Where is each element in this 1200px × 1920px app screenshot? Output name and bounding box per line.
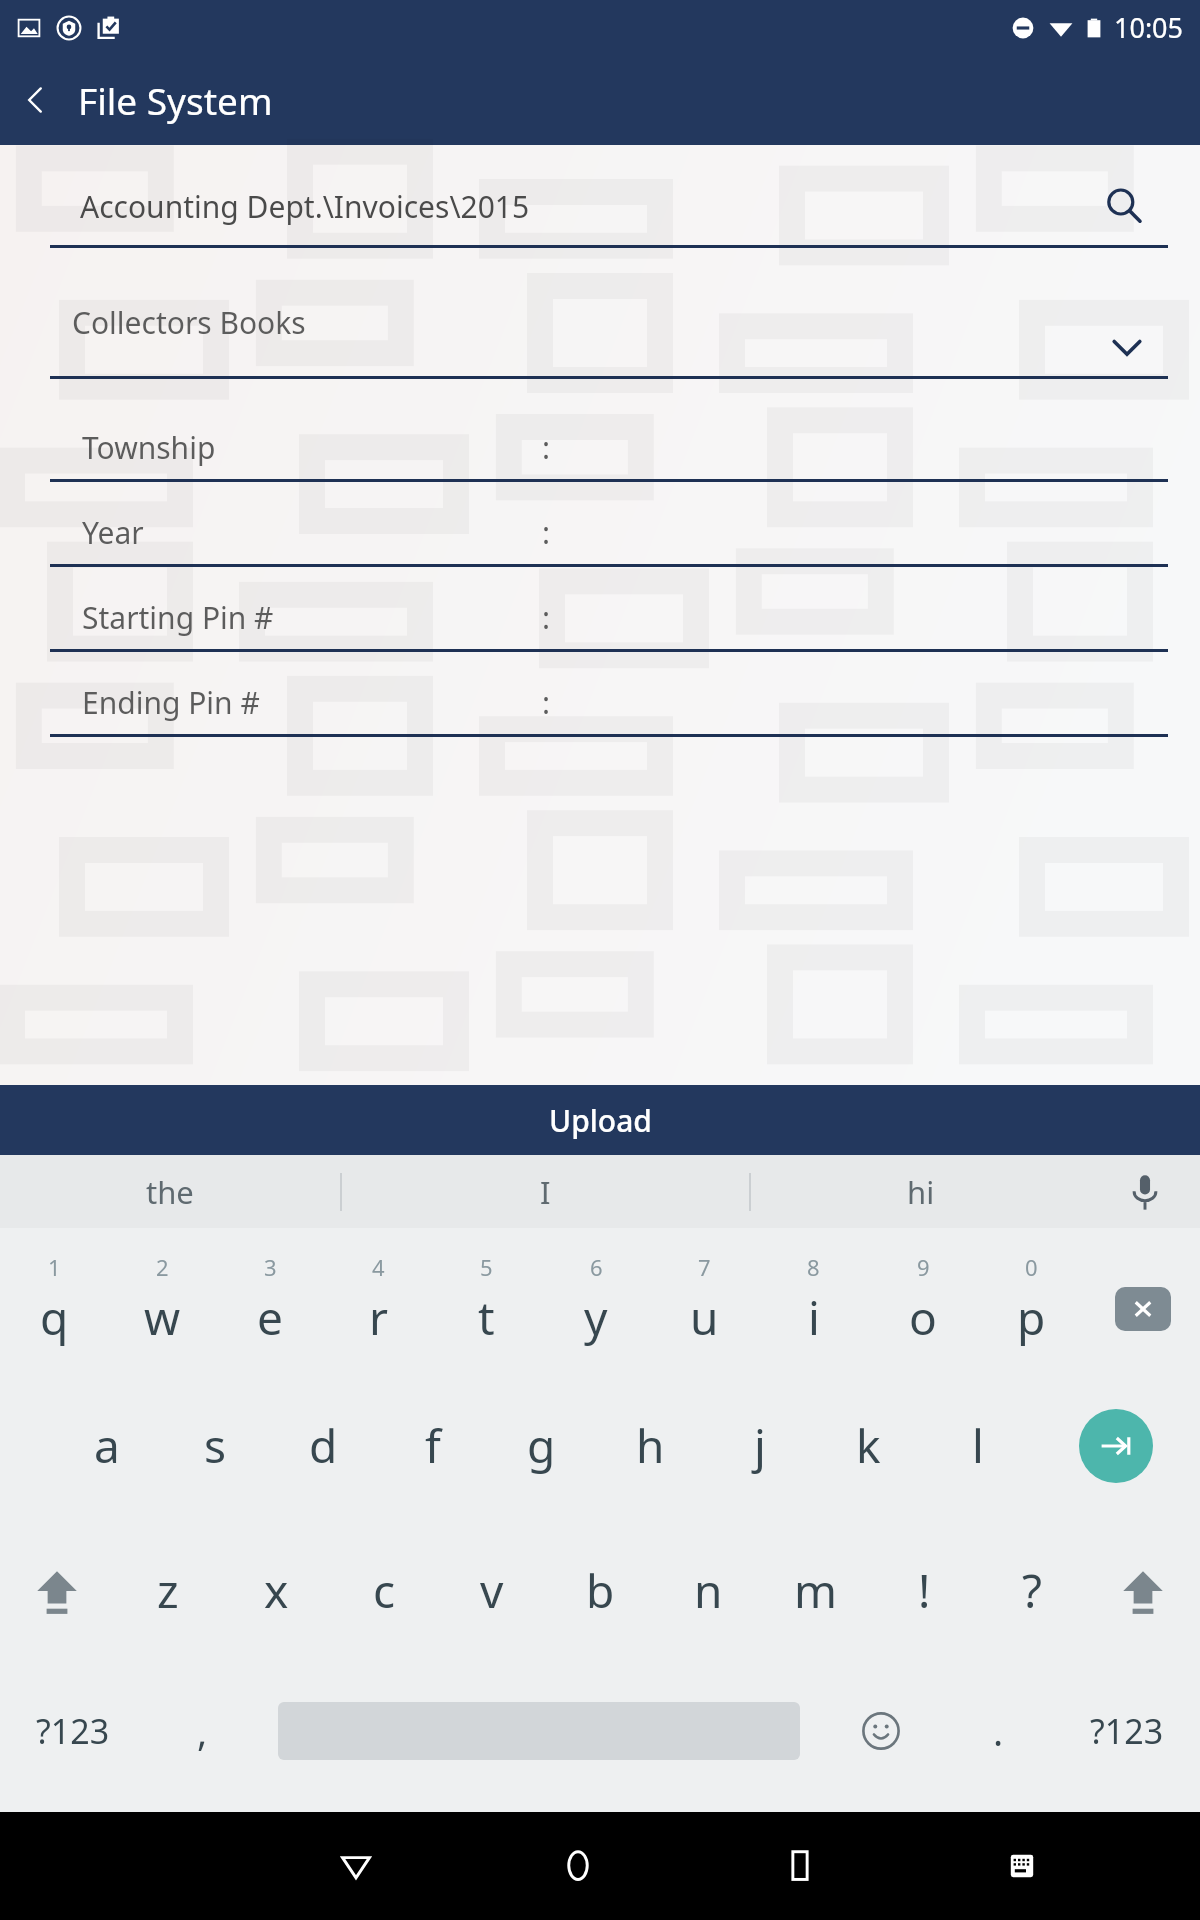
staticText: 0 [1025, 1252, 1038, 1282]
staticText: s [204, 1414, 227, 1477]
button[interactable]: Upload [0, 1085, 1200, 1155]
button[interactable]: x [222, 1518, 330, 1663]
button[interactable]: Accounting Dept.\Invoices\2015 [50, 167, 1168, 248]
button[interactable]: Ending Pin # [50, 670, 1168, 737]
button[interactable]: Back [6, 70, 66, 130]
staticText: n [694, 1559, 723, 1622]
staticText: Starting Pin # [82, 597, 274, 638]
staticText: File System [78, 75, 273, 125]
button[interactable]: s [161, 1373, 269, 1518]
button[interactable]: c [330, 1518, 438, 1663]
button[interactable]: l [923, 1373, 1032, 1518]
button[interactable]: I [342, 1155, 749, 1228]
button[interactable]: z [114, 1518, 222, 1663]
button[interactable]: Emoji [819, 1663, 942, 1798]
button[interactable]: Switch keyboard [911, 1812, 1133, 1920]
staticText: Township [82, 427, 216, 468]
staticText: a [94, 1414, 120, 1477]
button[interactable]: 1 [0, 1228, 108, 1373]
button[interactable]: ! [870, 1518, 978, 1663]
button[interactable]: Shift [1086, 1518, 1200, 1663]
button[interactable]: Expand dropdown [1098, 318, 1156, 376]
button[interactable]: 3 [216, 1228, 324, 1373]
staticText: : [542, 682, 551, 723]
staticText: e [257, 1286, 283, 1349]
staticText: q [40, 1286, 69, 1349]
staticText: r [369, 1286, 388, 1349]
button[interactable]: 4 [324, 1228, 432, 1373]
button[interactable]: Starting Pin # [50, 585, 1168, 652]
staticText: 6 [590, 1252, 603, 1282]
button[interactable]: Back [245, 1812, 467, 1920]
button[interactable]: ?123 [1054, 1663, 1200, 1798]
button[interactable]: Recents [689, 1812, 911, 1920]
button[interactable]: Voice input [1090, 1155, 1200, 1228]
staticText: x [264, 1559, 289, 1622]
button[interactable]: Township [50, 415, 1168, 482]
button[interactable]: j [705, 1373, 814, 1518]
button[interactable]: ? [978, 1518, 1086, 1663]
button[interactable]: , [146, 1663, 258, 1798]
button[interactable]: 7 [650, 1228, 759, 1373]
staticText: y [584, 1286, 608, 1349]
staticText: h [636, 1414, 665, 1477]
staticText: ! [918, 1559, 931, 1622]
button[interactable]: Year [50, 500, 1168, 567]
button[interactable]: 6 [541, 1228, 650, 1373]
staticText: Upload [549, 1100, 652, 1141]
staticText: 7 [698, 1252, 711, 1282]
button[interactable]: Next field [1032, 1373, 1200, 1518]
staticText: v [480, 1559, 504, 1622]
staticText: 9 [917, 1252, 930, 1282]
staticText: , [197, 1705, 208, 1757]
staticText: l [972, 1414, 984, 1477]
button[interactable]: Home [467, 1812, 689, 1920]
button[interactable]: 8 [759, 1228, 868, 1373]
staticText: m [794, 1559, 838, 1622]
button[interactable]: Shift [0, 1518, 114, 1663]
staticText: ? [1022, 1559, 1042, 1622]
staticText: ?123 [1090, 1708, 1164, 1754]
button[interactable]: Collectors Books [50, 298, 1168, 379]
button[interactable]: g [487, 1373, 596, 1518]
button[interactable]: Space [258, 1663, 819, 1798]
staticText: 4 [372, 1252, 385, 1282]
staticText: k [856, 1414, 881, 1477]
staticText: c [373, 1559, 396, 1622]
button[interactable]: the [0, 1155, 340, 1228]
staticText: ?123 [36, 1708, 110, 1754]
button[interactable]: hi [751, 1155, 1090, 1228]
staticText: 10:05 [1114, 9, 1184, 46]
button[interactable]: n [654, 1518, 762, 1663]
staticText: Collectors Books [72, 302, 306, 343]
staticText: g [527, 1414, 556, 1477]
button[interactable]: 9 [868, 1228, 977, 1373]
button[interactable]: 5 [432, 1228, 541, 1373]
staticText: i [808, 1286, 820, 1349]
staticText: Ending Pin # [82, 682, 260, 723]
button[interactable]: f [378, 1373, 487, 1518]
staticText: 1 [48, 1252, 61, 1282]
staticText: : [542, 512, 551, 553]
staticText: w [144, 1286, 181, 1349]
button[interactable]: . [942, 1663, 1054, 1798]
button[interactable]: v [438, 1518, 546, 1663]
staticText: p [1017, 1286, 1046, 1349]
button[interactable]: d [269, 1373, 378, 1518]
staticText: 2 [156, 1252, 169, 1282]
button[interactable]: k [814, 1373, 923, 1518]
staticText: hi [907, 1171, 935, 1213]
staticText: t [478, 1286, 495, 1349]
button[interactable]: 2 [108, 1228, 216, 1373]
button[interactable]: Backspace [1086, 1228, 1200, 1373]
button[interactable]: h [596, 1373, 705, 1518]
button[interactable]: 0 [977, 1228, 1086, 1373]
button[interactable]: a [53, 1373, 161, 1518]
staticText: : [542, 427, 551, 468]
staticText: 5 [480, 1252, 493, 1282]
button[interactable]: b [546, 1518, 654, 1663]
staticText: : [542, 597, 551, 638]
button[interactable]: m [762, 1518, 870, 1663]
button[interactable]: ?123 [0, 1663, 146, 1798]
button[interactable]: Search [1092, 174, 1156, 238]
